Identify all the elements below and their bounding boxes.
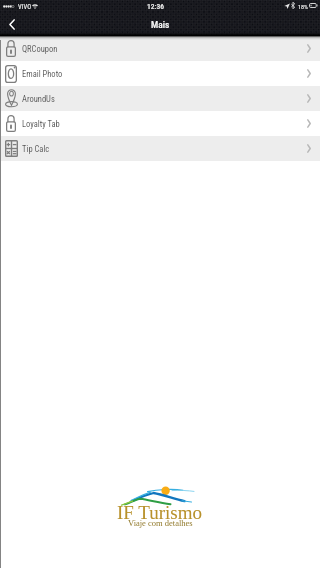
button[interactable]: AroundUs <box>0 86 320 111</box>
staticText: QRCoupon <box>22 44 58 54</box>
staticText: Tip Calc <box>22 144 50 154</box>
staticText: Email Photo <box>22 69 63 79</box>
button[interactable]: Tip Calc <box>0 136 320 161</box>
button[interactable]: Loyalty Tab <box>0 111 320 136</box>
button[interactable]: Back <box>0 14 28 36</box>
staticText: VIVO <box>18 3 32 11</box>
button[interactable]: QRCoupon <box>0 36 320 61</box>
staticText: 12:36 <box>147 2 164 11</box>
staticText: Viaje com detalhes <box>128 518 193 527</box>
staticText: Mais <box>151 19 170 30</box>
staticText: 18% <box>298 3 309 10</box>
staticText: AroundUs <box>22 94 55 104</box>
staticText: IF Turismo <box>117 502 203 523</box>
staticText: Loyalty Tab <box>22 119 60 129</box>
button[interactable]: Email Photo <box>0 61 320 86</box>
